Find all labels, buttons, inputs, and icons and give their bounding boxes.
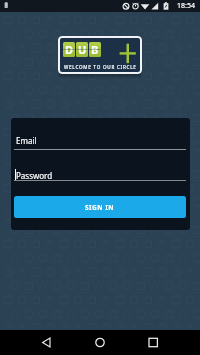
staticText: U — [78, 42, 87, 57]
button[interactable] — [142, 330, 164, 355]
button[interactable] — [89, 330, 111, 355]
staticText: B — [91, 42, 99, 57]
staticText: Password — [16, 170, 53, 181]
button[interactable]: SIGN IN — [14, 196, 186, 218]
staticText: WELCOME TO OUR CIRCLE — [64, 64, 137, 70]
staticText: Email — [16, 135, 37, 146]
button[interactable]: Email — [14, 133, 186, 150]
staticText: D — [65, 42, 74, 57]
staticText: SIGN IN — [85, 203, 115, 212]
button[interactable] — [36, 330, 57, 355]
staticText: 18:54 — [177, 1, 195, 11]
button[interactable]: Password — [14, 167, 186, 181]
